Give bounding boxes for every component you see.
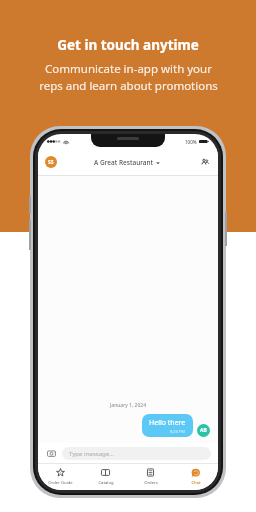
button[interactable]: Account avatar: [45, 156, 57, 168]
staticText: Chat: [191, 480, 201, 486]
staticText: Communicate in-app with your reps and le…: [39, 61, 218, 93]
button[interactable]: Type message...: [62, 447, 211, 460]
staticText: Get in touch anytime: [57, 36, 199, 54]
staticText: 100%: [185, 139, 197, 145]
button[interactable]: Chat: [173, 464, 218, 490]
button[interactable]: Orders: [128, 464, 173, 490]
staticText: Catalog: [98, 480, 114, 486]
button[interactable]: Attach photo: [45, 447, 57, 459]
staticText: Type message...: [69, 450, 114, 458]
staticText: AB: [200, 427, 207, 434]
staticText: 8:20 PM: [170, 429, 186, 434]
button[interactable]: Hello there: [142, 414, 193, 437]
staticText: January 1, 2024: [110, 402, 147, 409]
button[interactable]: A Great Restaurant: [94, 158, 160, 167]
staticText: SS: [48, 159, 54, 166]
button[interactable]: Catalog: [83, 464, 128, 490]
button[interactable]: Order Guide: [38, 464, 83, 490]
staticText: Orders: [144, 480, 158, 486]
staticText: Hello there: [149, 418, 186, 428]
staticText: A Great Restaurant: [94, 158, 154, 167]
button[interactable]: Contacts: [197, 155, 211, 169]
staticText: Order Guide: [48, 480, 73, 486]
